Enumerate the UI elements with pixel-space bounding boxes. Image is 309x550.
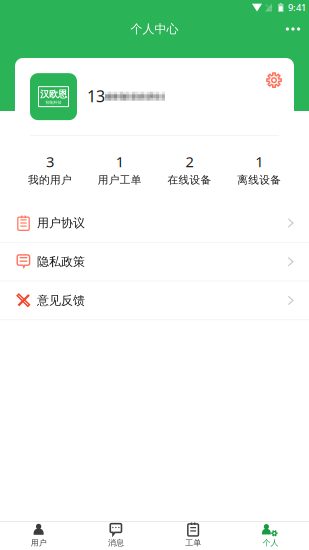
staticText: 13 [87, 85, 105, 107]
button[interactable]: 意见反馈 [0, 281, 309, 319]
button[interactable]: 1 [224, 136, 294, 201]
button[interactable]: 2 [154, 136, 224, 201]
button[interactable]: 1 [85, 136, 155, 201]
button[interactable]: 个人 [232, 525, 309, 550]
button[interactable]: Settings [263, 69, 285, 91]
button[interactable]: 用户协议 [0, 204, 309, 242]
staticText: 消息 [108, 538, 124, 548]
staticText: 我的用户 [28, 173, 72, 186]
staticText: 9:41 [288, 1, 306, 14]
button[interactable]: More options [280, 16, 306, 42]
staticText: 离线设备 [237, 173, 281, 186]
staticText: 用户 [31, 538, 47, 548]
staticText: 个人 [262, 538, 278, 548]
staticText: 智能科技 [45, 100, 61, 105]
staticText: 在线设备 [167, 173, 211, 186]
button[interactable]: 消息 [77, 525, 154, 550]
staticText: 个人中心 [130, 22, 178, 36]
staticText: 隐私政策 [37, 254, 85, 269]
staticText: 工单 [185, 538, 201, 548]
staticText: 2 [185, 152, 193, 171]
staticText: 汉欧恩 [40, 88, 67, 100]
staticText: 用户协议 [37, 216, 85, 230]
staticText: 1 [116, 152, 124, 171]
staticText: 用户工单 [98, 173, 142, 186]
staticText: 意见反馈 [37, 293, 85, 308]
staticText: 3 [46, 152, 54, 171]
button[interactable]: 3 [15, 136, 85, 201]
button[interactable]: 隐私政策 [0, 243, 309, 281]
staticText: 1 [255, 152, 263, 171]
button[interactable]: 工单 [154, 525, 232, 550]
button[interactable]: 用户 [0, 525, 77, 550]
